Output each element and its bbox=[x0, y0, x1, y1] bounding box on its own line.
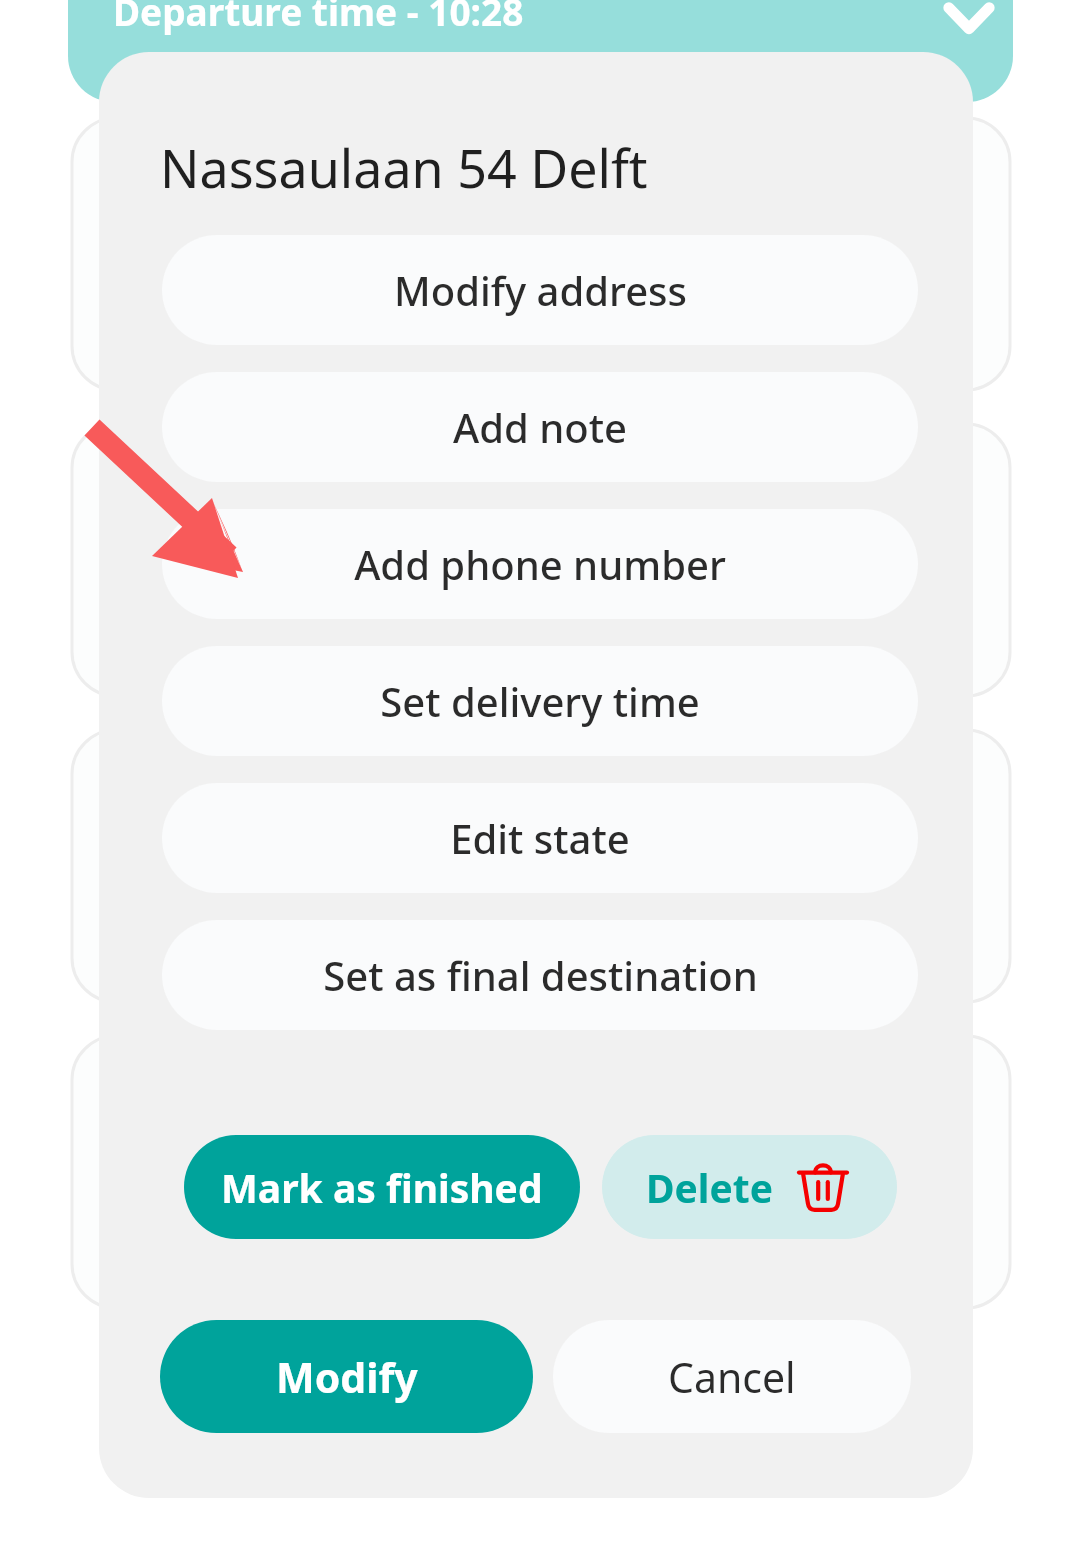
button[interactable]: Edit state bbox=[162, 783, 918, 893]
button[interactable]: Add note bbox=[162, 372, 918, 482]
staticText: Add phone number bbox=[354, 537, 726, 591]
button[interactable]: Mark as finished bbox=[184, 1135, 580, 1239]
button[interactable]: Set as final destination bbox=[162, 920, 918, 1030]
button[interactable]: Delete bbox=[602, 1135, 897, 1239]
staticText: Nassaulaan 54 Delft bbox=[160, 132, 648, 203]
button[interactable]: Collapse bbox=[933, 0, 1005, 56]
staticText: Cancel bbox=[668, 1349, 796, 1405]
staticText: Set as final destination bbox=[323, 948, 758, 1002]
button[interactable]: Departure time - 10:28 bbox=[68, 0, 1013, 102]
staticText: Modify address bbox=[394, 263, 687, 317]
staticText: Edit state bbox=[450, 811, 630, 865]
button[interactable]: Add phone number bbox=[162, 509, 918, 619]
staticText: Departure time - 10:28 bbox=[113, 0, 524, 36]
staticText: Modify bbox=[276, 1349, 418, 1405]
staticText: Add note bbox=[453, 400, 627, 454]
staticText: Mark as finished bbox=[221, 1161, 543, 1214]
button[interactable]: Modify address bbox=[162, 235, 918, 345]
button[interactable]: Set delivery time bbox=[162, 646, 918, 756]
button[interactable]: Modify bbox=[160, 1320, 533, 1433]
button[interactable]: Cancel bbox=[553, 1320, 911, 1433]
staticText: Delete bbox=[646, 1161, 773, 1214]
staticText: Set delivery time bbox=[380, 674, 700, 728]
